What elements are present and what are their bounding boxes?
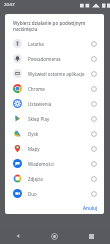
button[interactable]: Zdjęcia xyxy=(5,171,104,186)
staticText: Wybierz działanie po podwójnym naciśnięc… xyxy=(13,20,86,32)
button[interactable]: Anuluj xyxy=(77,203,104,213)
button[interactable]: Powiadomienia xyxy=(5,51,104,66)
button[interactable]: Latarka xyxy=(5,36,104,51)
staticText: Zdjęcia xyxy=(28,176,88,182)
button[interactable]: Recent apps xyxy=(73,228,110,244)
staticText: Dysk xyxy=(28,131,88,137)
staticText: Sklep Play xyxy=(28,116,88,122)
staticText: Duo xyxy=(28,191,88,197)
button[interactable]: Home xyxy=(36,228,73,244)
staticText: Wiadomości xyxy=(28,161,88,167)
button[interactable]: Mapy xyxy=(5,141,104,156)
button[interactable]: Back xyxy=(0,228,36,244)
staticText: 20:57 xyxy=(4,2,15,8)
button[interactable]: Duo xyxy=(5,186,104,201)
staticText: Powiadomienia xyxy=(28,56,88,62)
staticText: Ustawienia xyxy=(28,101,88,107)
staticText: Chrome xyxy=(28,86,88,92)
button[interactable]: Dysk xyxy=(5,126,104,141)
button[interactable]: Chrome xyxy=(5,81,104,96)
button[interactable]: Wyświetl ostatnie aplikacje xyxy=(5,66,104,81)
staticText: Anuluj xyxy=(83,205,98,211)
staticText: Wyświetl ostatnie aplikacje xyxy=(28,71,88,77)
staticText: Latarka xyxy=(28,41,88,47)
button[interactable]: Wiadomości xyxy=(5,156,104,171)
staticText: Mapy xyxy=(28,146,88,152)
button[interactable]: Sklep Play xyxy=(5,111,104,126)
button[interactable]: Ustawienia xyxy=(5,96,104,111)
